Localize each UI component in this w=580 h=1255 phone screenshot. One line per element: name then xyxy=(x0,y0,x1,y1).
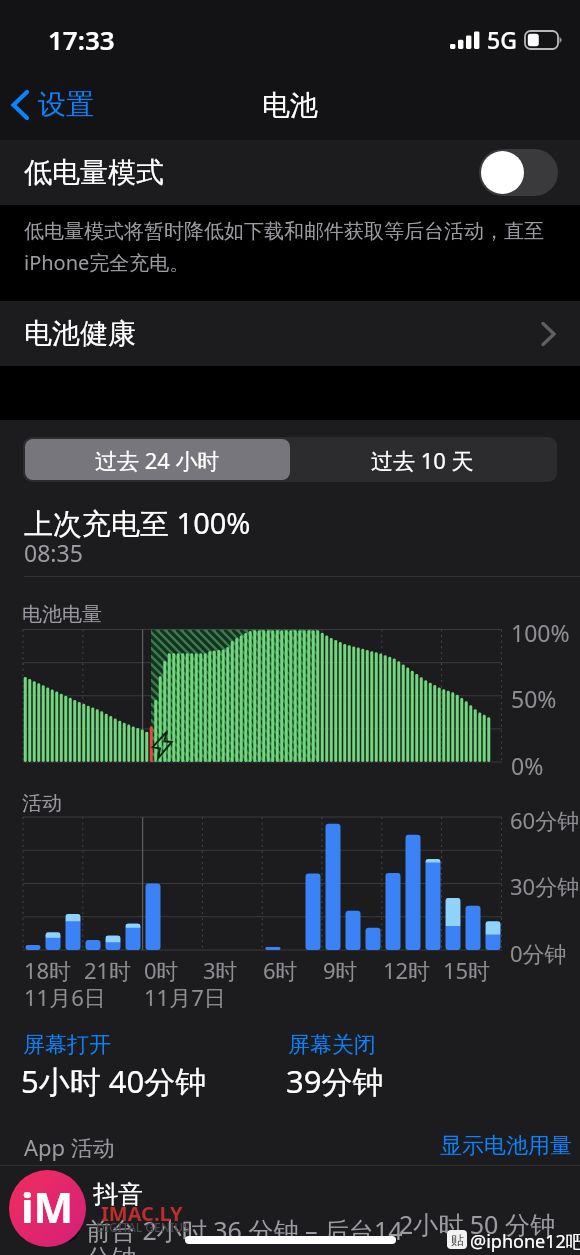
staticText: 17:33 xyxy=(48,22,115,57)
button[interactable]: 抖音 xyxy=(0,1166,580,1255)
staticText: 18时 xyxy=(24,955,72,985)
staticText: 活动 xyxy=(22,791,62,816)
staticText: @iphone12吧 xyxy=(470,1229,580,1254)
staticText: 分钟 xyxy=(86,1243,136,1255)
staticText: 上次充电至 100% xyxy=(24,503,251,543)
staticText: 2小时 50 分钟 xyxy=(399,1207,555,1241)
button[interactable]: 低电量模式 xyxy=(0,140,580,205)
staticText: 11月6日 xyxy=(24,982,106,1012)
button[interactable]: 设置 xyxy=(0,83,104,126)
staticText: 前台 2小时 36 分钟 – 后台14 xyxy=(86,1213,403,1247)
staticText: 60分钟 xyxy=(510,805,580,835)
button[interactable]: 电池健康 xyxy=(0,301,580,366)
staticText: 过去 24 小时 xyxy=(95,445,220,475)
staticText: IMAC.LY xyxy=(101,1200,183,1227)
staticText: 9时 xyxy=(323,955,358,985)
staticText: 低电量模式 xyxy=(24,155,164,190)
staticText: 100% xyxy=(511,617,570,648)
staticText: 屏幕打开 xyxy=(23,1031,111,1059)
staticText: 电池健康 xyxy=(24,316,136,351)
staticText: 5G xyxy=(487,24,517,55)
staticText: 50% xyxy=(511,683,557,714)
staticText: 抖音 xyxy=(93,1179,143,1210)
staticText: 39分钟 xyxy=(286,1060,384,1102)
staticText: 过去 10 天 xyxy=(371,445,474,475)
button[interactable]: Low Power Mode toggle xyxy=(479,149,558,196)
staticText: 0% xyxy=(511,750,544,781)
staticText: 电池电量 xyxy=(22,602,102,627)
staticText: DIGITAL GENIUS xyxy=(96,1219,190,1235)
staticText: 0分钟 xyxy=(510,938,567,968)
staticText: 电池 xyxy=(262,88,318,123)
staticText: 5小时 40分钟 xyxy=(21,1060,207,1102)
button[interactable]: 显示电池用量 xyxy=(440,1132,572,1160)
staticText: 3时 xyxy=(203,955,238,985)
staticText: 设置 xyxy=(38,87,94,122)
staticText: 屏幕关闭 xyxy=(288,1031,376,1059)
staticText: 08:35 xyxy=(24,537,83,568)
button[interactable]: 过去 24 小时 xyxy=(25,439,290,480)
staticText: 低电量模式将暂时降低如下载和邮件获取等后台活动，直至 iPhone完全充电。 xyxy=(24,217,544,276)
staticText: 15时 xyxy=(443,955,491,985)
staticText: 贴 xyxy=(451,1232,464,1248)
staticText: 0时 xyxy=(144,955,179,985)
staticText: 11月7日 xyxy=(144,982,226,1012)
staticText: 30分钟 xyxy=(510,871,580,901)
staticText: 12时 xyxy=(383,955,431,985)
staticText: 6时 xyxy=(263,955,298,985)
staticText: 21时 xyxy=(84,955,132,985)
staticText: App 活动 xyxy=(24,1132,115,1162)
button[interactable]: 过去 10 天 xyxy=(290,439,555,480)
staticText: iM xyxy=(21,1178,74,1235)
